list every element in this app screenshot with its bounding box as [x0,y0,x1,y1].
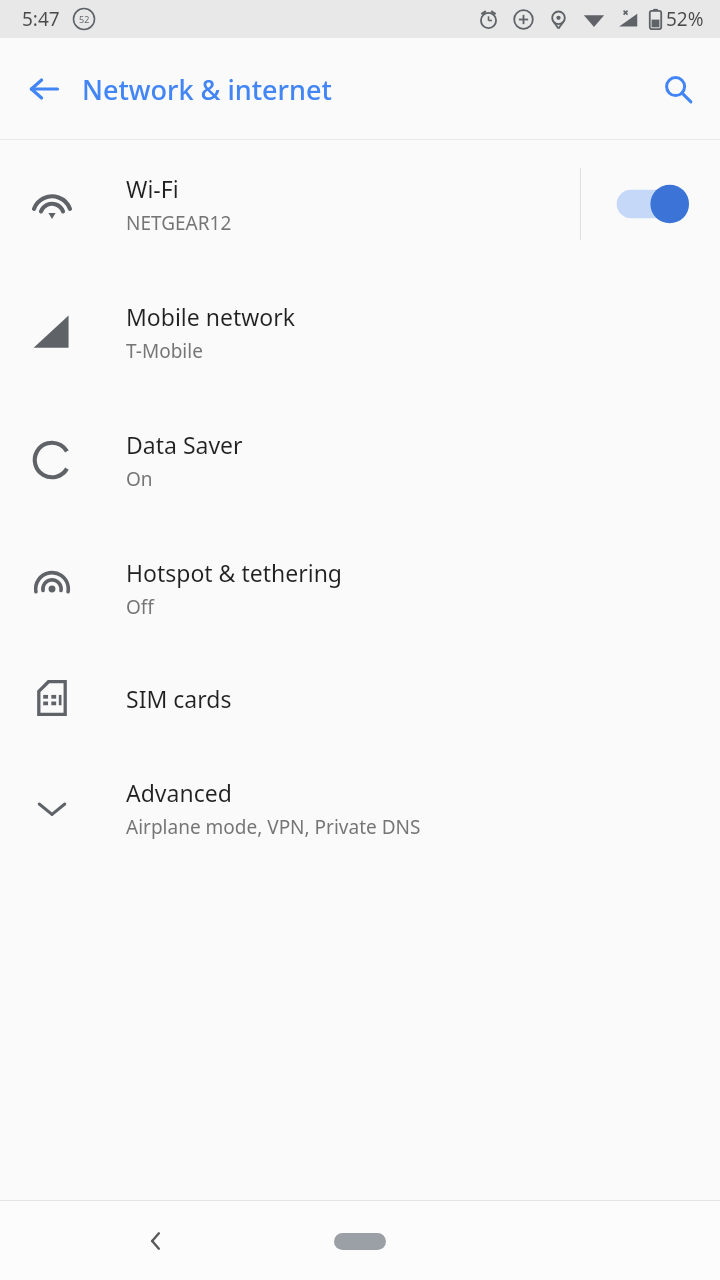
button[interactable]: Hotspot & tethering [0,524,720,652]
staticText: Off [126,594,154,620]
staticText: Network & internet [82,71,332,108]
button[interactable]: Wi-Fi [0,140,720,268]
button[interactable]: SIM cards [0,652,720,744]
staticText: Hotspot & tethering [126,557,342,588]
button[interactable]: Home [305,1217,415,1265]
staticText: Mobile network [126,301,296,332]
button[interactable]: Search [650,61,706,117]
staticText: On [126,466,153,492]
staticText: NETGEAR12 [126,210,232,236]
staticText: T-Mobile [126,338,203,364]
staticText: Data Saver [126,429,243,460]
button[interactable]: Data Saver [0,396,720,524]
button[interactable]: Back [16,61,72,117]
staticText: Airplane mode, VPN, Private DNS [126,814,421,840]
button[interactable]: Back [128,1213,184,1269]
staticText: 5:47 [22,6,60,32]
staticText: 52% [666,6,704,32]
staticText: Advanced [126,777,232,808]
staticText: SIM cards [126,683,232,714]
staticText: Wi-Fi [126,173,179,204]
staticText: 52 [79,13,90,25]
button[interactable]: Mobile network [0,268,720,396]
button[interactable]: Advanced [0,744,720,872]
button[interactable]: Wi-Fi toggle [581,161,720,247]
